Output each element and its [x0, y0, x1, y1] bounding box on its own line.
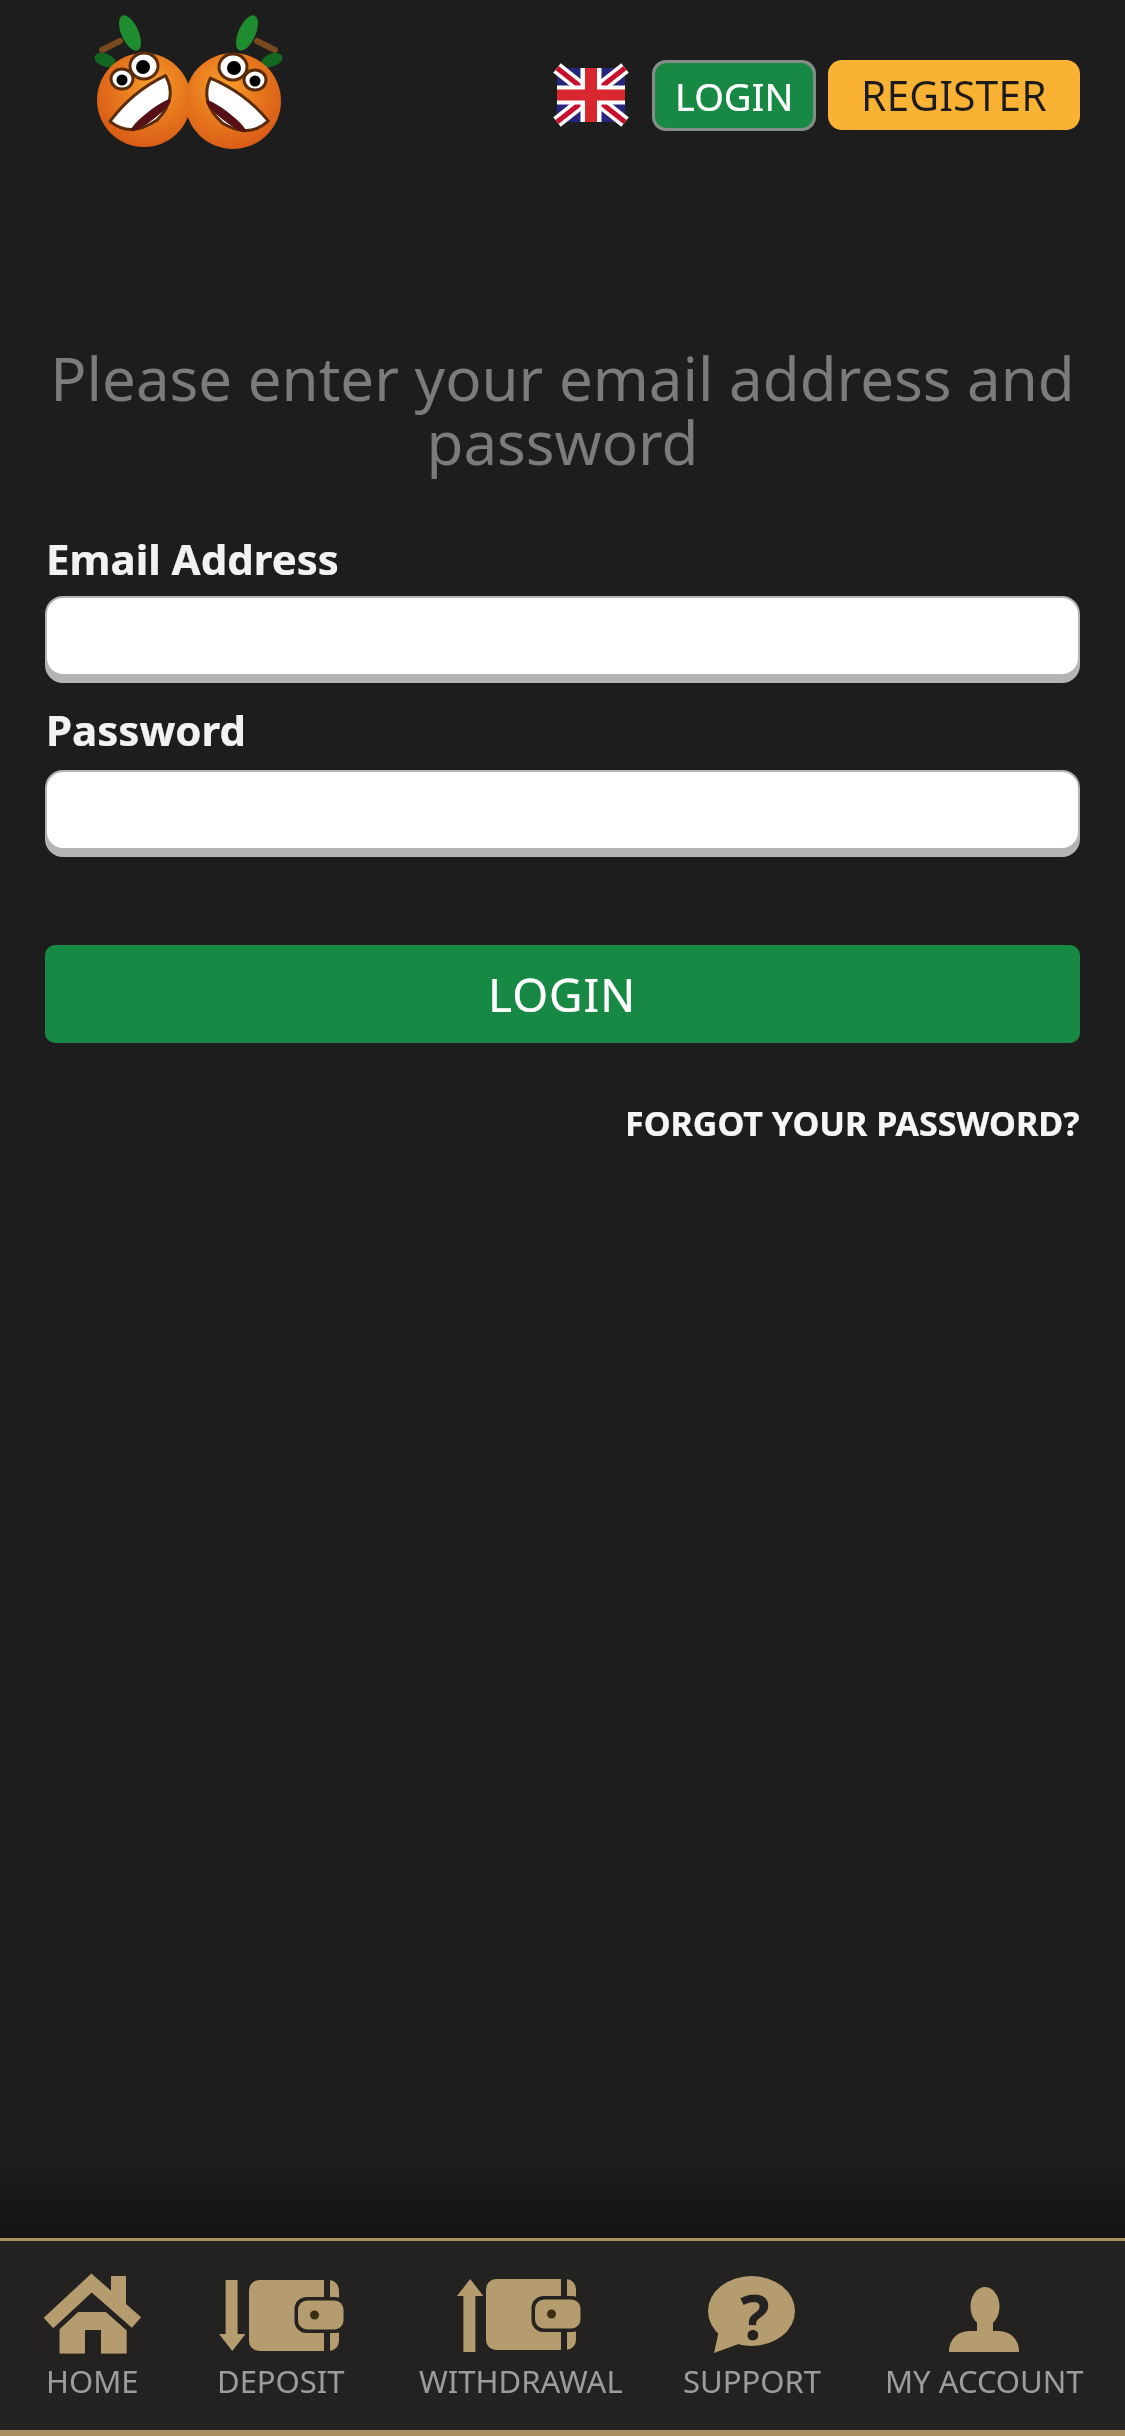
button[interactable] [557, 68, 625, 122]
staticText: DEPOSIT [217, 2360, 345, 2402]
button[interactable]: LOGIN [652, 60, 816, 131]
staticText: FORGOT YOUR PASSWORD? [625, 1100, 1080, 1146]
button[interactable]: FORGOT YOUR PASSWORD? [625, 1100, 1080, 1146]
button[interactable]: DEPOSIT [161, 2270, 401, 2402]
button[interactable]: LOGIN [45, 945, 1080, 1043]
button[interactable]: MY ACCOUNT [864, 2270, 1104, 2402]
staticText: MY ACCOUNT [885, 2360, 1084, 2402]
staticText: HOME [46, 2360, 139, 2402]
button[interactable]: REGISTER [828, 60, 1080, 130]
button[interactable]: ? [632, 2270, 872, 2402]
staticText: Please enter your email address and pass… [50, 337, 1075, 483]
button[interactable]: WITHDRAWAL [401, 2270, 641, 2402]
button[interactable]: HOME [0, 2270, 212, 2402]
button[interactable] [45, 596, 1080, 683]
staticText: REGISTER [861, 67, 1047, 123]
staticText: ? [740, 2274, 770, 2344]
staticText: SUPPORT [683, 2360, 821, 2402]
button[interactable] [45, 770, 1080, 857]
staticText: LOGIN [488, 963, 637, 1026]
staticText: Email Address [46, 530, 339, 587]
staticText: WITHDRAWAL [419, 2360, 623, 2402]
staticText: Password [46, 701, 247, 758]
staticText: LOGIN [675, 70, 794, 122]
